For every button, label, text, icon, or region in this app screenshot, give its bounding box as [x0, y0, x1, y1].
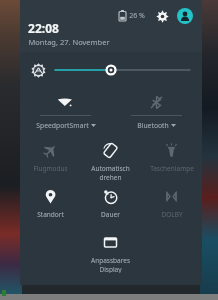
button[interactable]: Anpassbares Display: [80, 227, 141, 273]
button[interactable]: SpeedportSmart: [20, 88, 111, 130]
button[interactable]: Taschenlampe: [141, 135, 202, 181]
staticText: SpeedportSmart: [36, 121, 89, 130]
button[interactable]: Standort: [20, 181, 80, 227]
button[interactable]: Brightness slider: [55, 61, 190, 79]
staticText: 26 %: [129, 11, 145, 21]
button[interactable]: User account: [175, 6, 194, 25]
staticText: Taschenlampe: [150, 164, 194, 173]
staticText: Bluetooth: [137, 121, 169, 130]
button[interactable]: Automatisch drehen: [80, 135, 141, 181]
button[interactable]: Settings: [153, 7, 171, 25]
staticText: DOLBY: [161, 210, 183, 219]
button[interactable]: Bluetooth: [111, 88, 202, 130]
button[interactable]: 22:08: [28, 20, 110, 47]
button[interactable]: Auto brightness: [29, 61, 47, 79]
staticText: Anpassbares Display: [80, 256, 141, 273]
staticText: 22:08: [28, 20, 59, 36]
button[interactable]: DOLBY: [141, 181, 202, 227]
staticText: Flugmodus: [33, 164, 68, 173]
button[interactable]: Dauer: [80, 181, 141, 227]
staticText: Dauer: [101, 210, 120, 219]
button[interactable]: Flugmodus: [20, 135, 80, 181]
staticText: Standort: [37, 210, 64, 219]
staticText: Montag, 27. November: [28, 37, 110, 47]
staticText: Automatisch drehen: [80, 164, 141, 181]
